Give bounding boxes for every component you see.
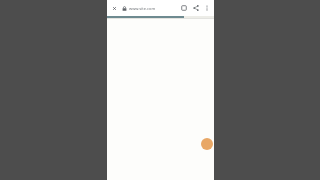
button[interactable]: Tabs: [178, 2, 190, 14]
staticText: www.site.com: [129, 6, 156, 11]
button[interactable]: Share: [190, 2, 202, 14]
button[interactable]: www.site.com: [122, 1, 176, 15]
button[interactable]: Close: [109, 3, 120, 14]
button[interactable]: More options: [202, 3, 212, 13]
